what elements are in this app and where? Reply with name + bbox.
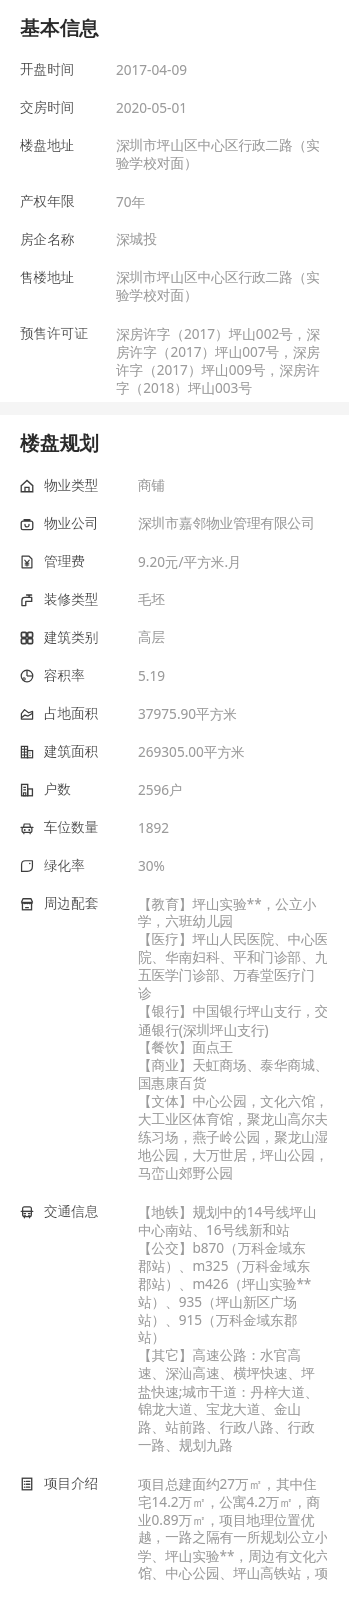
staticText: 项目介绍 [44,1475,138,1493]
staticText: 深圳市坪山区中心区行政二路（实 验学校对面） [116,269,320,305]
staticText: 预售许可证 [20,325,116,343]
button[interactable]: 装修类型 [0,591,349,629]
staticText: 37975.90平方米 [138,705,237,723]
staticText: 建筑类别 [44,629,138,647]
button[interactable]: 绿化率 [0,857,349,895]
button[interactable]: 建筑类别 [0,629,349,667]
button[interactable]: 交通信息 [0,1203,349,1475]
button[interactable]: 房企名称 [0,231,349,269]
staticText: 深圳市坪山区中心区行政二路（实 验学校对面） [116,137,320,173]
staticText: 9.20元/平方米.月 [138,553,242,571]
staticText: 高层 [138,629,166,647]
button[interactable]: 户数 [0,781,349,819]
button[interactable]: 管理费 [0,553,349,591]
button[interactable]: 项目介绍 [0,1475,349,1600]
staticText: 毛坯 [138,591,166,609]
staticText: 2020-05-01 [116,99,187,117]
button[interactable]: 车位数量 [0,819,349,857]
staticText: 占地面积 [44,705,138,723]
staticText: 建筑面积 [44,743,138,761]
staticText: 1892 [138,819,170,837]
staticText: 房企名称 [20,231,116,249]
button[interactable]: 占地面积 [0,705,349,743]
staticText: 交房时间 [20,99,116,117]
staticText: 项目总建面约27万㎡，其中住 宅14.2万㎡，公寓4.2万㎡，商 业0.89万㎡… [138,1475,327,1580]
staticText: 30% [138,857,165,875]
staticText: 70年 [116,193,146,211]
staticText: 楼盘规划 [20,434,99,456]
staticText: 产权年限 [20,193,116,211]
staticText: 【教育】坪山实验**，公立小 学，六班幼儿园 【医疗】坪山人民医院、中心医 院、… [138,895,327,1183]
staticText: 户数 [44,781,138,799]
staticText: 楼盘地址 [20,137,116,155]
staticText: 周边配套 [44,895,138,913]
button[interactable]: 产权年限 [0,193,349,231]
staticText: 物业公司 [44,515,138,533]
button[interactable]: 物业公司 [0,515,349,553]
button[interactable]: 开盘时间 [0,61,349,99]
staticText: 基本信息 [20,19,99,41]
staticText: 装修类型 [44,591,138,609]
staticText: 交通信息 [44,1203,138,1221]
staticText: 深城投 [116,231,157,249]
button[interactable]: 交房时间 [0,99,349,137]
staticText: 绿化率 [44,857,138,875]
staticText: 车位数量 [44,819,138,837]
staticText: 售楼地址 [20,269,116,287]
staticText: 容积率 [44,667,138,685]
staticText: 管理费 [44,553,138,571]
staticText: 物业类型 [44,477,138,495]
staticText: 269305.00平方米 [138,743,245,761]
staticText: 开盘时间 [20,61,116,79]
button[interactable]: 建筑面积 [0,743,349,781]
button[interactable]: 楼盘地址 [0,137,349,193]
button[interactable]: 容积率 [0,667,349,705]
staticText: 【地铁】规划中的14号线坪山 中心南站、16号线新和站 【公交】b870（万科金… [138,1203,319,1455]
staticText: 深圳市嘉邻物业管理有限公司 [138,515,315,533]
staticText: 商铺 [138,477,166,495]
button[interactable]: 物业类型 [0,477,349,515]
staticText: 深房许字（2017）坪山002号，深 房许字（2017）坪山007号，深房 许字… [116,325,320,397]
button[interactable]: 售楼地址 [0,269,349,325]
button[interactable]: 周边配套 [0,895,349,1203]
staticText: 2596户 [138,781,183,799]
staticText: 5.19 [138,667,165,685]
staticText: 2017-04-09 [116,61,187,79]
button[interactable]: 预售许可证 [0,325,349,402]
